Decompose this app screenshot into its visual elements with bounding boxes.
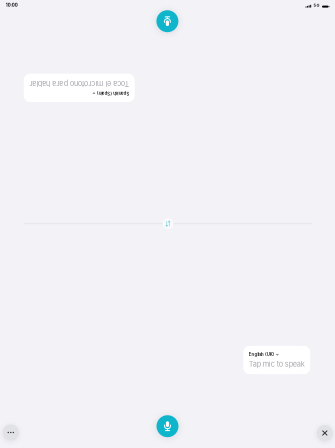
- staticText: Spanish (Spain): [29, 80, 62, 85]
- button[interactable]: Microphone: [156, 415, 178, 437]
- button[interactable]: Swap languages: [163, 218, 173, 229]
- staticText: English (UK): [249, 352, 275, 357]
- staticText: 5G: [313, 3, 319, 8]
- staticText: 10:00: [6, 2, 18, 8]
- button[interactable]: Microphone: [156, 10, 178, 32]
- button[interactable]: More options: [3, 424, 19, 440]
- button[interactable]: Close: [317, 425, 333, 441]
- staticText: Toca el micrófono para hablar: [29, 87, 129, 96]
- staticText: Tap mic to speak: [249, 360, 305, 369]
